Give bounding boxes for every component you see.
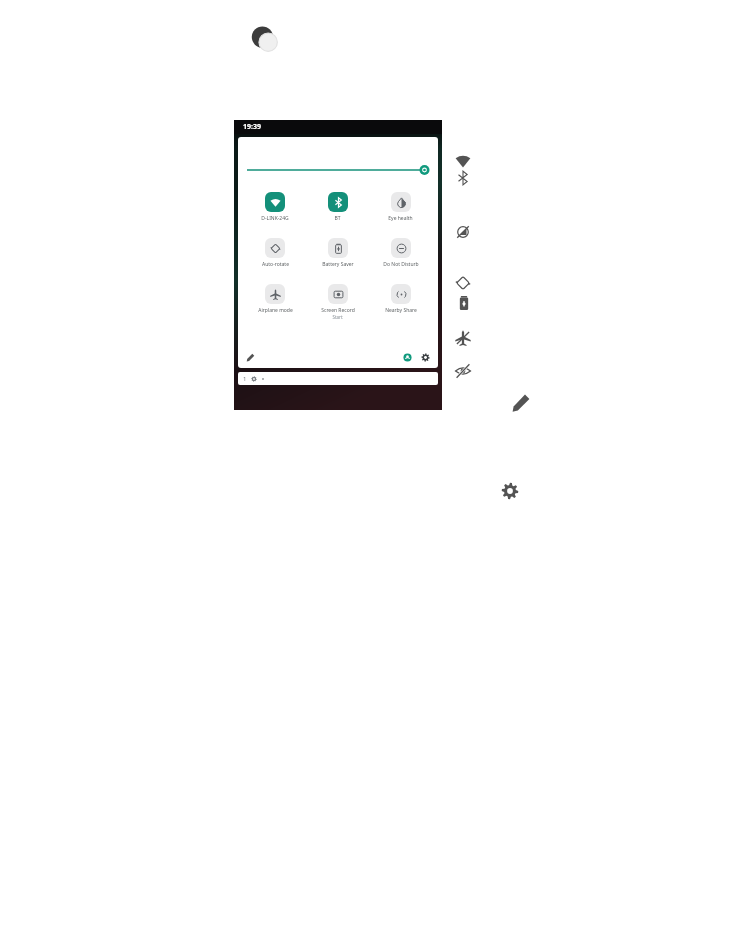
button[interactable]: Loading <box>248 22 284 58</box>
staticText: D-LINK-24G <box>261 215 289 222</box>
button[interactable]: Airplane mode <box>244 284 306 314</box>
button[interactable]: Auto-rotate <box>244 238 306 268</box>
staticText: Nearby Share <box>385 307 417 314</box>
button[interactable]: Do not disturb <box>455 363 471 379</box>
button[interactable]: Do Not Disturb <box>369 238 432 268</box>
staticText: 1 <box>243 375 247 383</box>
button[interactable]: Battery saver <box>456 295 472 311</box>
button[interactable]: Eye health off <box>455 224 471 240</box>
button[interactable]: 1 <box>238 372 438 385</box>
button[interactable]: Battery Saver <box>306 238 369 268</box>
button[interactable]: Airplane mode off <box>455 330 471 346</box>
button[interactable]: Bluetooth <box>455 170 471 186</box>
staticText: Do Not Disturb <box>383 261 419 268</box>
button[interactable]: Settings <box>421 353 430 362</box>
staticText: Eye health <box>388 215 413 222</box>
button[interactable]: Screen Record <box>306 284 369 320</box>
button[interactable]: Auto-rotate <box>455 275 471 291</box>
button[interactable]: D-LINK-24G <box>244 192 306 222</box>
button[interactable]: Settings <box>501 482 519 500</box>
staticText: Screen Record <box>321 307 355 314</box>
staticText: Auto-rotate <box>262 261 289 268</box>
button[interactable]: Eye health <box>369 192 432 222</box>
staticText: Airplane mode <box>258 307 293 314</box>
button[interactable]: User <box>403 353 412 362</box>
button[interactable]: Wi-Fi <box>455 153 471 169</box>
staticText: Start <box>332 314 343 320</box>
button[interactable] <box>247 164 429 176</box>
button[interactable]: Nearby Share <box>369 284 432 314</box>
button[interactable]: Edit <box>511 393 531 413</box>
button[interactable]: Edit tiles <box>246 353 255 362</box>
staticText: 19:39 <box>243 122 261 132</box>
staticText: Battery Saver <box>322 261 354 268</box>
button[interactable]: BT <box>306 192 369 222</box>
staticText: BT <box>334 215 341 222</box>
